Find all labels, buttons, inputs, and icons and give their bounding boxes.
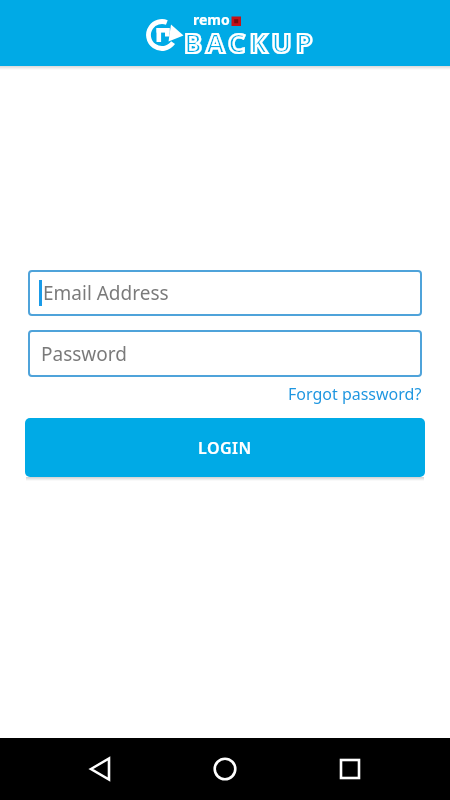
button[interactable]: Password	[28, 330, 422, 377]
staticText: Email Address	[43, 280, 169, 306]
staticText: BACKUP	[184, 24, 317, 61]
button[interactable]	[326, 745, 374, 793]
staticText: Password	[41, 341, 127, 367]
button[interactable]	[77, 745, 125, 793]
staticText: LOGIN	[198, 437, 252, 459]
button[interactable]: Email Address	[28, 270, 422, 316]
button[interactable]: Forgot password?	[288, 383, 422, 405]
button[interactable]: LOGIN	[25, 418, 425, 477]
button[interactable]	[201, 745, 249, 793]
staticText: remo	[193, 10, 230, 29]
